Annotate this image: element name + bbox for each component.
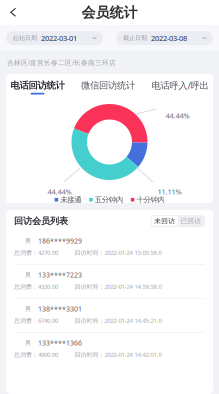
staticText: 186****9929 (38, 236, 82, 245)
staticText: 未接通 (60, 195, 81, 204)
staticText: 总消费：6740.00 (14, 316, 58, 324)
staticText: 138****3301 (38, 304, 82, 313)
button[interactable]: 男 (6, 266, 213, 300)
staticText: 回访时间：2022-01-24 14:59:58.0 (74, 282, 161, 290)
staticText: 起始日期 (13, 34, 37, 42)
staticText: 五分钟内 (95, 195, 123, 204)
button[interactable]: 未回访 (152, 216, 178, 226)
staticText: 133****7223 (38, 270, 82, 279)
staticText: 男 (25, 339, 31, 347)
button[interactable]: 起始日期 (6, 31, 103, 45)
staticText: 吉林区/直营长春二区/长春南三环店 (7, 58, 116, 67)
staticText: 44.44% (165, 110, 189, 121)
staticText: 2022-03-08 (151, 33, 187, 43)
button[interactable]: 男 (6, 300, 213, 334)
staticText: 总消费：4900.00 (14, 350, 58, 358)
button[interactable]: 截止日期 (116, 31, 213, 45)
staticText: 44.44% (47, 186, 71, 197)
staticText: 回访时间：2022-01-24 14:45:21.0 (74, 316, 161, 324)
button[interactable]: 电话回访统计 (10, 79, 64, 95)
staticText: 男 (25, 271, 31, 279)
staticText: 133****1366 (38, 338, 82, 347)
staticText: 未回访 (154, 217, 175, 225)
staticText: 已回访 (180, 217, 201, 225)
button[interactable]: 电话呼入/呼出 (151, 79, 208, 95)
staticText: 截止日期 (123, 34, 147, 42)
button[interactable]: 已回访 (178, 216, 204, 226)
staticText: 电话回访统计 (10, 79, 64, 91)
staticText: 微信回访统计 (81, 79, 135, 91)
staticText: 会员统计 (81, 4, 137, 21)
staticText: 男 (25, 305, 31, 313)
staticText: 总消费：4270.00 (14, 248, 58, 256)
staticText: 总消费：4320.00 (14, 282, 58, 290)
staticText: 回访时间：2022-01-24 15:05:58.0 (74, 248, 161, 256)
button[interactable]: 男 (6, 334, 213, 368)
staticText: 男 (25, 237, 31, 245)
staticText: 十分钟内 (136, 195, 164, 204)
button[interactable]: Back (0, 1, 24, 23)
button[interactable]: 男 (6, 232, 213, 266)
staticText: 电话呼入/呼出 (151, 79, 208, 92)
staticText: 2022-03-01 (41, 33, 77, 43)
staticText: 11.11% (157, 186, 181, 197)
button[interactable]: 微信回访统计 (81, 79, 135, 95)
staticText: 回访会员列表 (14, 215, 68, 227)
staticText: 回访时间：2022-01-24 14:42:01.0 (74, 350, 161, 358)
